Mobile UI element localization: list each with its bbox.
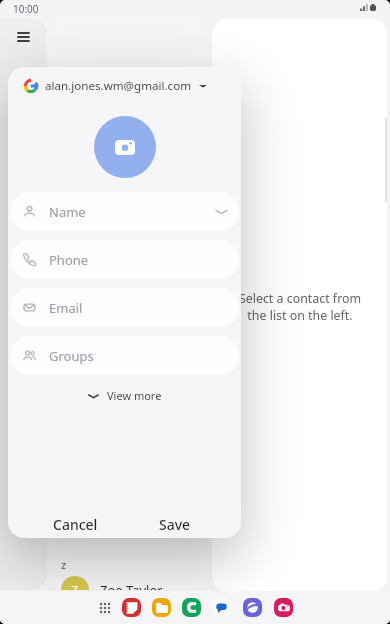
button[interactable]: Cancel	[41, 508, 110, 538]
button[interactable]: Files	[152, 598, 171, 617]
staticText: Groups	[49, 347, 94, 365]
button[interactable]: Email	[10, 288, 239, 327]
button[interactable]: Phone	[182, 598, 201, 617]
staticText: Save	[159, 515, 191, 534]
button[interactable]: Messages	[212, 598, 231, 617]
button[interactable]: Add photo	[94, 116, 156, 178]
staticText: 10:00	[13, 2, 39, 16]
staticText: Select a contact from the list on the le…	[220, 290, 380, 324]
button[interactable]: All apps	[93, 594, 116, 621]
button[interactable]: View more	[79, 385, 170, 406]
button[interactable]: Menu	[5, 18, 42, 55]
staticText: alan.jones.wm@gmail.com	[45, 78, 192, 94]
staticText: View more	[107, 388, 162, 403]
button[interactable]: Save	[147, 508, 203, 538]
staticText: Phone	[49, 251, 89, 269]
button[interactable]: Z	[47, 570, 208, 590]
staticText: Zoe Taylor	[100, 581, 163, 590]
staticText: Email	[49, 299, 83, 317]
button[interactable]: Name	[10, 192, 239, 231]
button[interactable]: alan.jones.wm@gmail.com	[8, 72, 241, 99]
staticText: Z	[71, 581, 79, 590]
staticText: Cancel	[53, 515, 98, 534]
button[interactable]: Keep	[122, 598, 141, 617]
button[interactable]: Internet	[243, 598, 262, 617]
button[interactable]: Phone	[10, 240, 239, 279]
button[interactable]: Camera	[274, 598, 293, 617]
button[interactable]: Groups	[10, 336, 239, 375]
staticText: z	[61, 557, 67, 572]
staticText: Name	[49, 203, 86, 221]
